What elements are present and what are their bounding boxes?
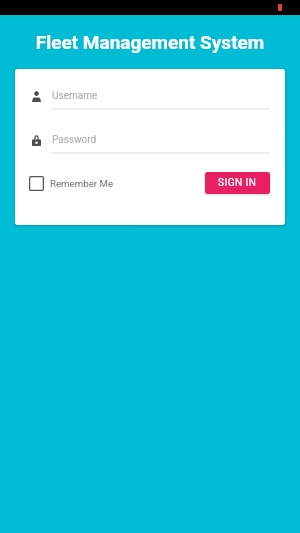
button[interactable]: Password (30, 127, 270, 154)
button[interactable]: Username (30, 83, 270, 110)
button[interactable]: Remember Me (27, 174, 114, 193)
staticText: Username (52, 90, 98, 102)
button[interactable]: SIGN IN (205, 172, 270, 194)
staticText: Fleet Management System (0, 31, 300, 53)
staticText: Password (52, 134, 97, 146)
staticText: Remember Me (50, 178, 114, 189)
staticText: SIGN IN (218, 177, 257, 189)
